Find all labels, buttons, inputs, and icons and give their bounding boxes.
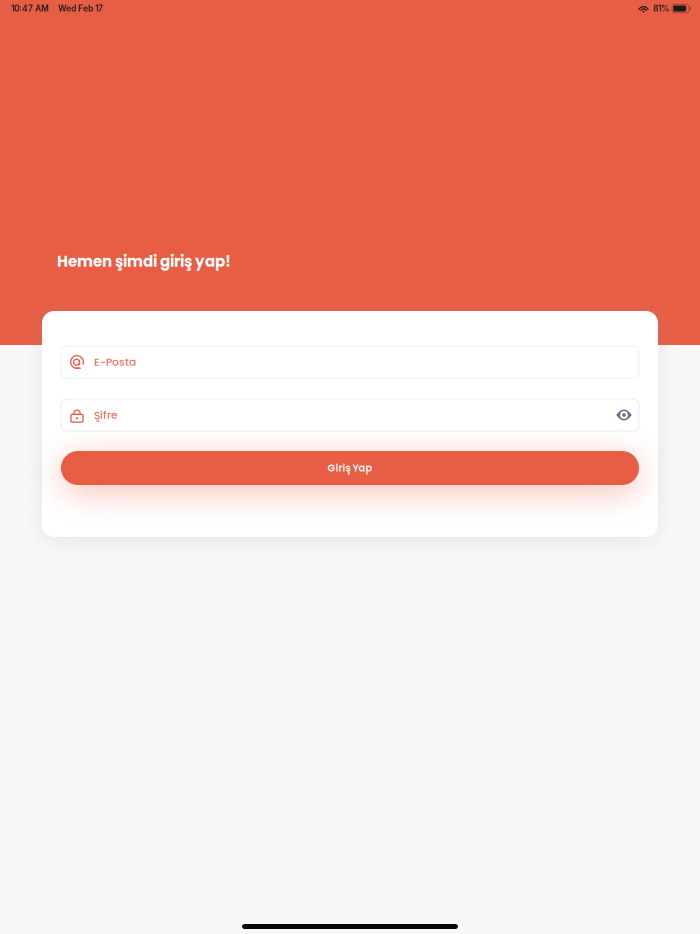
staticText: Şifre bbox=[94, 407, 118, 422]
staticText: Giriş Yap bbox=[327, 461, 372, 475]
staticText: 81% bbox=[653, 3, 669, 13]
staticText: E-Posta bbox=[94, 354, 136, 369]
button[interactable]: Giriş Yap bbox=[61, 451, 639, 485]
staticText: Wed Feb 17 bbox=[58, 3, 103, 13]
staticText: 10:47 AM bbox=[11, 3, 49, 13]
staticText: Hemen şimdi giriş yap! bbox=[57, 251, 231, 272]
button[interactable]: E-Posta bbox=[61, 346, 639, 378]
button[interactable]: Show password bbox=[613, 404, 635, 426]
button[interactable]: Şifre bbox=[61, 399, 639, 431]
